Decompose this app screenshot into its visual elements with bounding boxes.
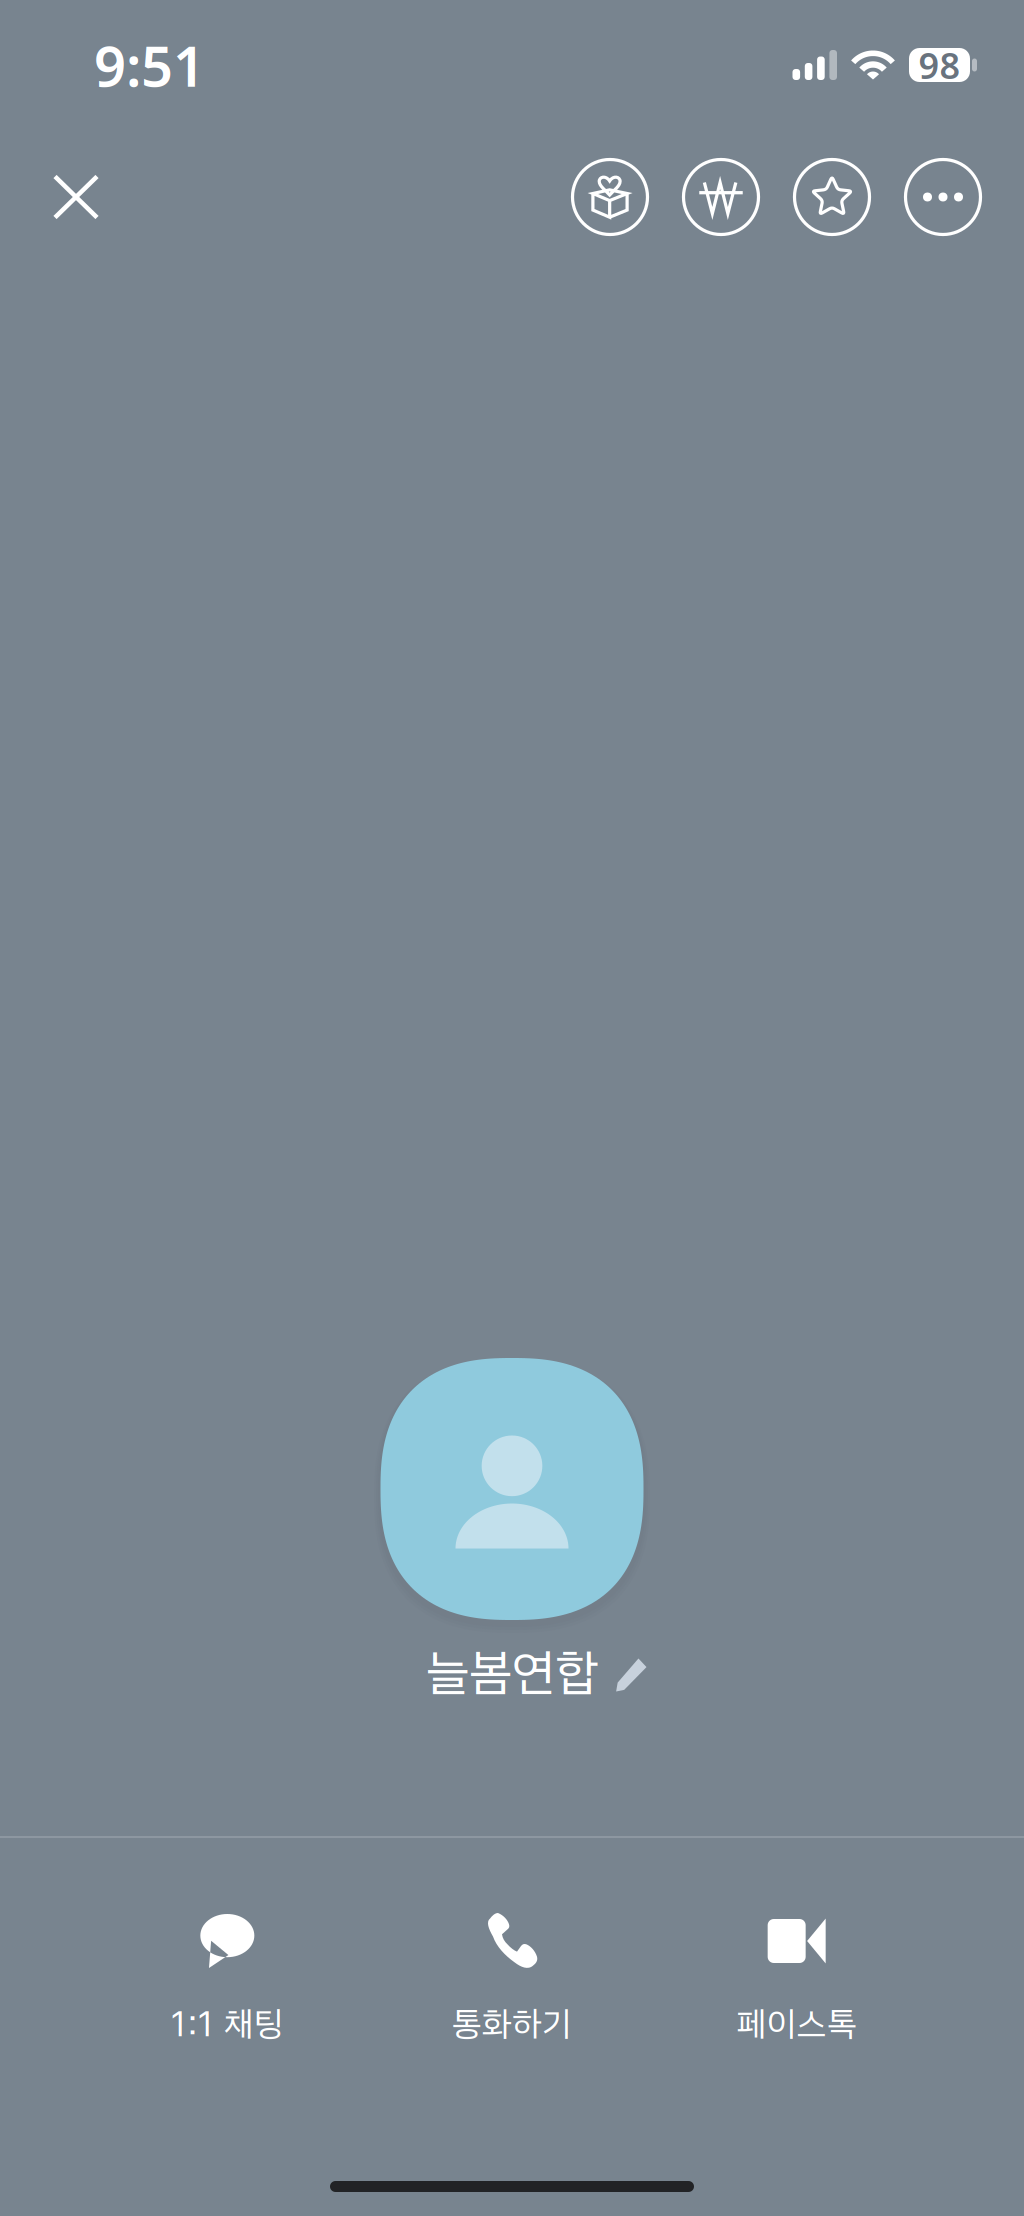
staticText: 통화하기 bbox=[452, 2003, 572, 2045]
button[interactable]: More options bbox=[904, 158, 982, 236]
button[interactable]: 통화하기 bbox=[370, 1912, 654, 2046]
button[interactable]: Close bbox=[37, 158, 115, 236]
staticText: 늘봄연합 bbox=[426, 1643, 598, 1703]
button[interactable]: Add to favourites bbox=[793, 158, 871, 236]
button[interactable]: Send money bbox=[682, 158, 760, 236]
button[interactable]: Edit name bbox=[496, 1656, 527, 1689]
staticText: 98 bbox=[918, 41, 960, 89]
button[interactable]: 늘봄연합 bbox=[426, 1643, 598, 1703]
button[interactable]: Send a gift bbox=[571, 158, 649, 236]
staticText: 페이스톡 bbox=[737, 2003, 857, 2045]
button[interactable]: 페이스톡 bbox=[654, 1912, 939, 2046]
button[interactable]: 1:1 채팅 bbox=[85, 1912, 370, 2046]
staticText: 1:1 채팅 bbox=[171, 2003, 284, 2045]
staticText: 9:51 bbox=[94, 28, 205, 102]
